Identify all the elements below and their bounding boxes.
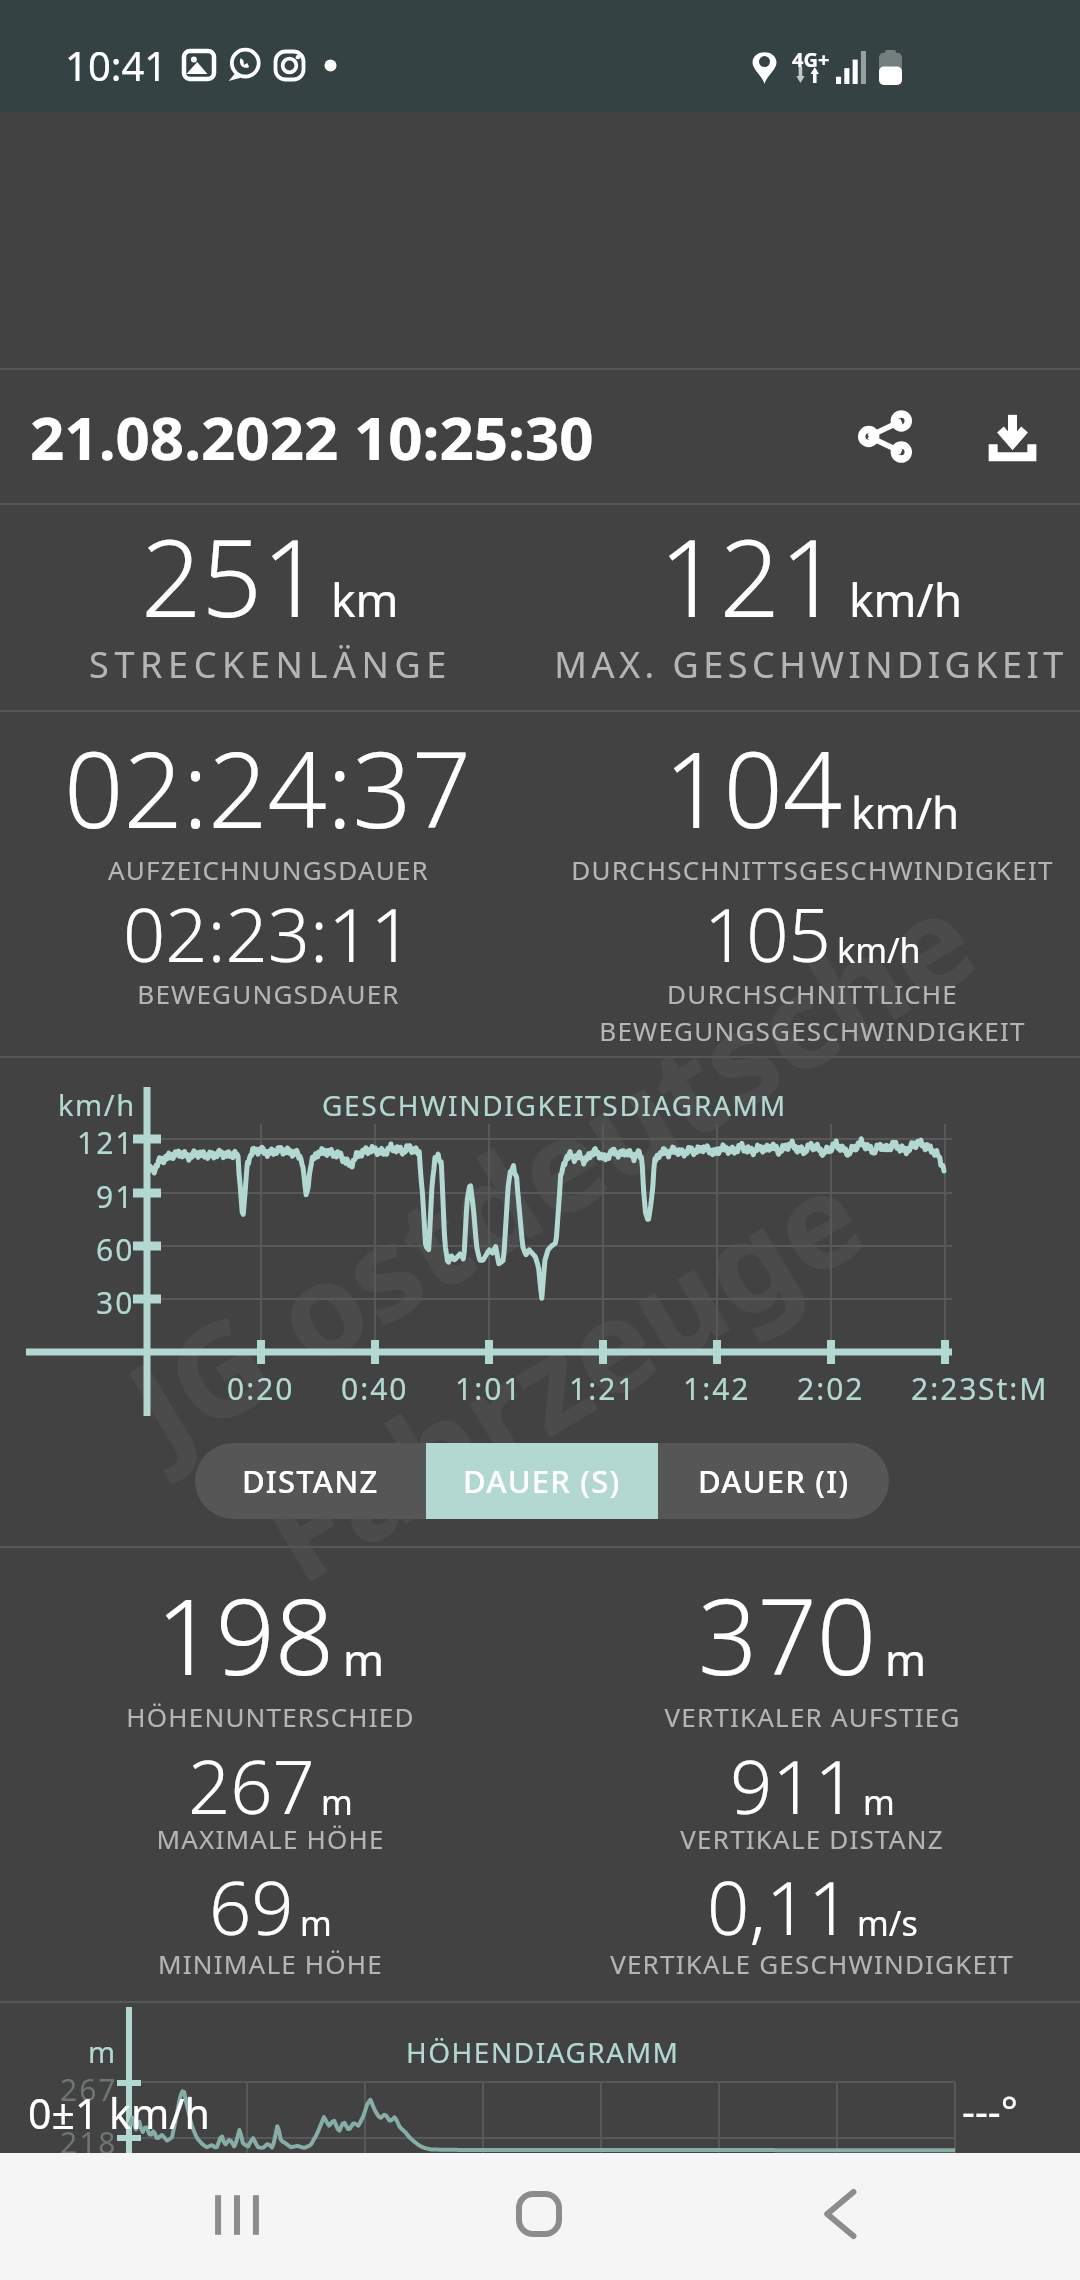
staticText: m — [885, 1629, 927, 1689]
staticText: JG ostdeutsche — [96, 848, 1004, 1489]
staticText: DAUER (I) — [698, 1460, 850, 1502]
button[interactable]: Recent apps — [215, 2193, 259, 2237]
button[interactable]: Share — [836, 379, 934, 493]
staticText: 2:02 — [797, 1368, 865, 1409]
staticText: m — [300, 1900, 332, 1946]
staticText: 02:24:37 — [64, 717, 472, 859]
staticText: 4G+ — [792, 46, 830, 73]
staticText: 104 — [664, 717, 843, 859]
staticText: 69 — [209, 1856, 294, 1957]
staticText: VERTIKALE DISTANZ — [680, 1821, 944, 1856]
button[interactable]: Back — [824, 2189, 856, 2239]
staticText: STRECKENLÄNGE — [89, 640, 452, 689]
staticText: 60 — [96, 1229, 135, 1270]
staticText: 218 — [60, 2122, 118, 2163]
button[interactable]: Home — [516, 2191, 562, 2237]
staticText: 911 — [730, 1735, 857, 1836]
staticText: 2:23 — [911, 1368, 979, 1409]
staticText: m/s — [857, 1900, 918, 1946]
staticText: 91 — [96, 1176, 135, 1217]
staticText: m — [88, 2032, 116, 2071]
staticText: 02:23:11 — [123, 883, 413, 984]
staticText: VERTIKALE GESCHWINDIGKEIT — [610, 1946, 1014, 1981]
staticText: km/h — [837, 927, 921, 973]
staticText: m — [321, 1779, 353, 1825]
staticText: DURCHSCHNITTSGESCHWINDIGKEIT — [571, 852, 1054, 887]
staticText: 21.08.2022 10:25:30 — [30, 396, 594, 478]
staticText: 121 — [659, 504, 841, 648]
staticText: km/h — [58, 1085, 136, 1124]
staticText: km — [331, 568, 399, 631]
staticText: 121 — [77, 1122, 135, 1163]
staticText: 0:20 — [227, 1368, 295, 1409]
staticText: MAX. GESCHWINDIGKEIT — [554, 640, 1068, 689]
staticText: 10:41 — [65, 38, 168, 92]
staticText: DURCHSCHNITTLICHE BEWEGUNGSGESCHWINDIGKE… — [599, 976, 1026, 1049]
staticText: GESCHWINDIGKEITSDIAGRAMM — [322, 1086, 787, 1124]
staticText: 0:40 — [341, 1368, 409, 1409]
staticText: ---° — [962, 2083, 1018, 2137]
staticText: 251 — [141, 504, 323, 648]
staticText: MAXIMALE HÖHE — [156, 1821, 385, 1856]
staticText: 370 — [698, 1564, 877, 1706]
staticText: m — [863, 1779, 895, 1825]
staticText: 198 — [156, 1564, 335, 1706]
staticText: Fahrzeuge — [230, 1126, 892, 1619]
staticText: 105 — [704, 883, 831, 984]
staticText: 1:21 — [569, 1368, 637, 1409]
button[interactable]: DISTANZ — [195, 1443, 426, 1519]
button[interactable]: DAUER (I) — [658, 1443, 889, 1519]
staticText: km/h — [851, 782, 960, 842]
staticText: MINIMALE HÖHE — [158, 1946, 383, 1981]
staticText: DAUER (S) — [463, 1460, 621, 1502]
staticText: 0±1 km/h — [28, 2085, 210, 2141]
staticText: DISTANZ — [242, 1460, 379, 1502]
staticText: HÖHENUNTERSCHIED — [126, 1699, 415, 1734]
staticText: VERTIKALER AUFSTIEG — [664, 1699, 961, 1734]
staticText: St:M — [978, 1368, 1049, 1409]
staticText: 267 — [188, 1735, 315, 1836]
staticText: 1:01 — [455, 1368, 523, 1409]
staticText: 30 — [96, 1282, 135, 1323]
staticText: 1:42 — [683, 1368, 751, 1409]
button[interactable]: DAUER (S) — [426, 1443, 658, 1519]
staticText: HÖHENDIAGRAMM — [406, 2033, 680, 2071]
staticText: BEWEGUNGSDAUER — [137, 976, 400, 1011]
staticText: km/h — [849, 568, 963, 631]
staticText: m — [343, 1629, 385, 1689]
staticText: AUFZEICHNUNGSDAUER — [108, 852, 429, 887]
staticText: 267 — [60, 2069, 118, 2110]
staticText: 0,11 — [707, 1856, 851, 1957]
button[interactable]: Download — [964, 379, 1060, 493]
